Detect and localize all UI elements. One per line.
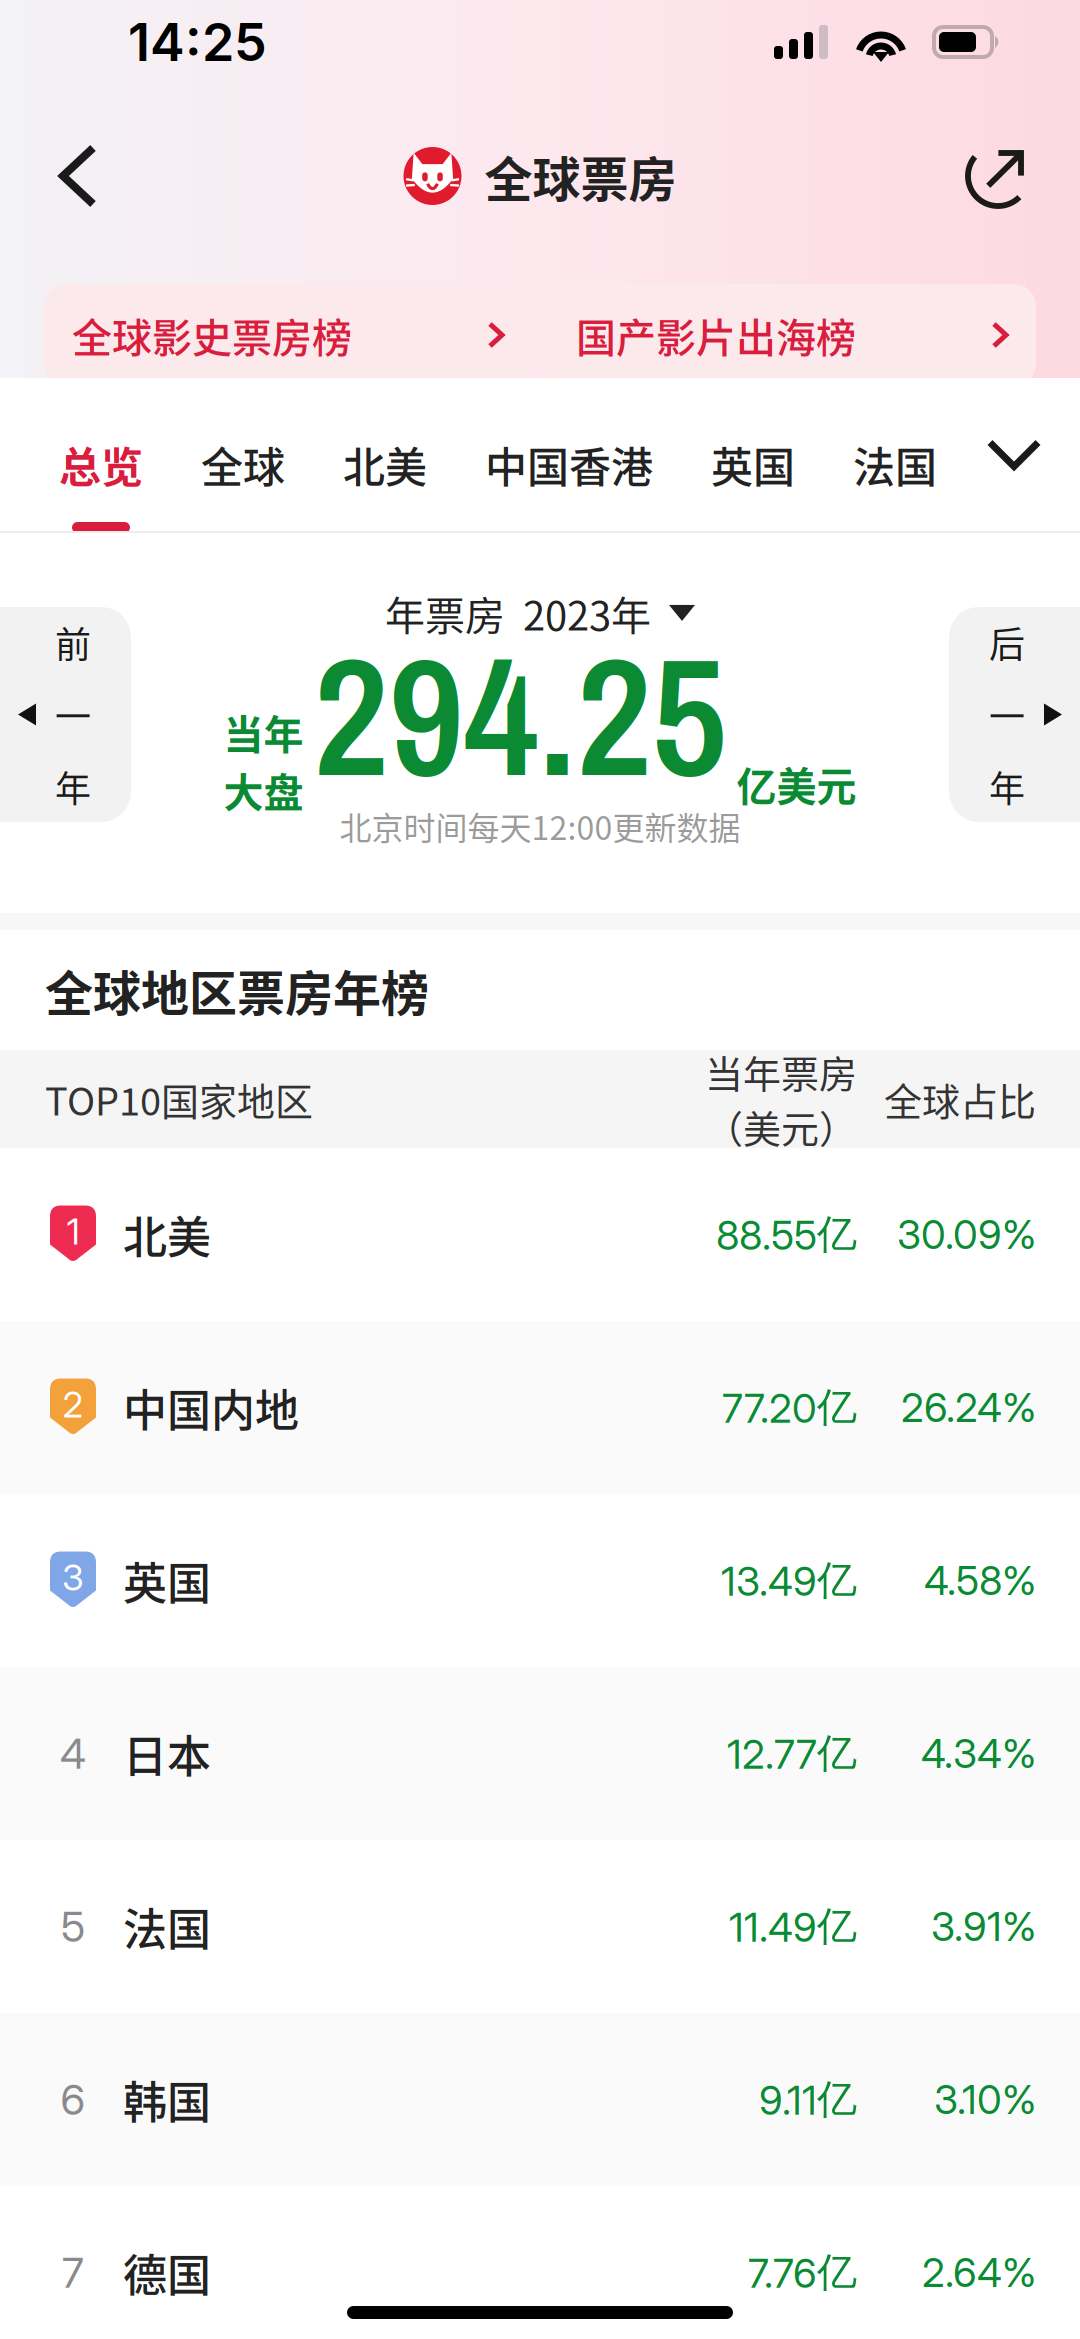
staticText: 年票房 <box>385 584 505 642</box>
staticText: 5 <box>61 1901 85 1952</box>
staticText: 6 <box>60 2074 85 2125</box>
staticText: TOP10国家地区 <box>45 1071 313 1126</box>
staticText: 3 <box>62 1555 84 1599</box>
button[interactable]: Share <box>946 124 1050 228</box>
staticText: 1 <box>66 1209 79 1253</box>
staticText: 韩国 <box>123 2068 211 2131</box>
staticText: 亿美元 <box>736 755 856 813</box>
button[interactable]: 2 <box>0 1321 1080 1494</box>
staticText: 德国 <box>123 2241 211 2304</box>
button[interactable]: 1 <box>0 1148 1080 1321</box>
staticText: 年 <box>989 761 1025 813</box>
staticText: 全球影史票房榜 <box>72 306 352 364</box>
staticText: 英国 <box>123 1549 211 1612</box>
button[interactable]: 国产影片出海榜 <box>548 284 1036 386</box>
staticText: 中国香港 <box>485 434 653 495</box>
staticText: 北美 <box>123 1203 211 1266</box>
staticText: 法国 <box>853 434 937 495</box>
staticText: 后 <box>989 616 1025 668</box>
staticText: 4 <box>60 1728 86 1779</box>
staticText: 12.77亿 <box>727 1728 857 1779</box>
staticText: 3.10% <box>934 2075 1036 2124</box>
button[interactable]: Show all regions <box>948 378 1080 531</box>
staticText: 14:25 <box>128 10 267 73</box>
staticText: 9.11亿 <box>759 2074 857 2125</box>
staticText: 全球占比 <box>884 1071 1036 1126</box>
staticText: （美元） <box>705 1099 857 1154</box>
button[interactable]: 前 <box>0 607 146 822</box>
staticText: 全球票房 <box>484 141 676 211</box>
button[interactable]: 后 <box>934 607 1080 822</box>
staticText: 2 <box>62 1382 83 1426</box>
staticText: 年 <box>55 761 91 813</box>
button[interactable]: 中国香港 <box>456 394 682 534</box>
staticText: 中国内地 <box>123 1376 299 1439</box>
button[interactable]: 全球 <box>172 394 314 534</box>
staticText: 总览 <box>59 434 143 495</box>
button[interactable]: 北美 <box>314 394 456 534</box>
staticText: 30.09% <box>897 1210 1036 1259</box>
staticText: 大盘 <box>223 761 303 819</box>
button[interactable]: 法国 <box>824 394 966 534</box>
staticText: 4.34% <box>921 1729 1036 1778</box>
button[interactable]: 3 <box>0 1494 1080 1667</box>
staticText: 3.91% <box>931 1902 1036 1951</box>
button[interactable]: 英国 <box>682 394 824 534</box>
staticText: 全球地区票房年榜 <box>45 955 429 1025</box>
staticText: 2023年 <box>523 584 651 642</box>
staticText: 77.20亿 <box>722 1382 857 1433</box>
staticText: 一 <box>989 688 1025 740</box>
button[interactable]: 总览 <box>30 394 172 534</box>
staticText: 国产影片出海榜 <box>576 306 856 364</box>
button[interactable]: 4 <box>0 1667 1080 1840</box>
staticText: 日本 <box>123 1722 211 1785</box>
staticText: 7.76亿 <box>748 2247 857 2298</box>
button[interactable]: Back <box>26 124 130 228</box>
staticText: 英国 <box>711 434 795 495</box>
staticText: 前 <box>55 616 91 668</box>
staticText: 北美 <box>343 434 427 495</box>
button[interactable]: 7 <box>0 2186 1080 2339</box>
staticText: 11.49亿 <box>729 1901 857 1952</box>
staticText: 4.58% <box>924 1556 1036 1605</box>
button[interactable]: 5 <box>0 1840 1080 2013</box>
staticText: 当年票房 <box>705 1044 857 1099</box>
staticText: 当年 <box>223 703 303 761</box>
staticText: 法国 <box>123 1895 211 1958</box>
button[interactable]: 全球影史票房榜 <box>44 284 532 386</box>
staticText: 全球 <box>201 434 285 495</box>
staticText: 7 <box>62 2247 84 2298</box>
staticText: 13.49亿 <box>721 1555 857 1606</box>
staticText: 2.64% <box>922 2248 1036 2297</box>
staticText: 294.25 <box>313 604 726 827</box>
staticText: 一 <box>55 688 91 740</box>
staticText: 26.24% <box>901 1383 1036 1432</box>
staticText: 北京时间每天12:00更新数据 <box>339 803 740 849</box>
staticText: 88.55亿 <box>716 1209 857 1260</box>
button[interactable]: 6 <box>0 2013 1080 2186</box>
